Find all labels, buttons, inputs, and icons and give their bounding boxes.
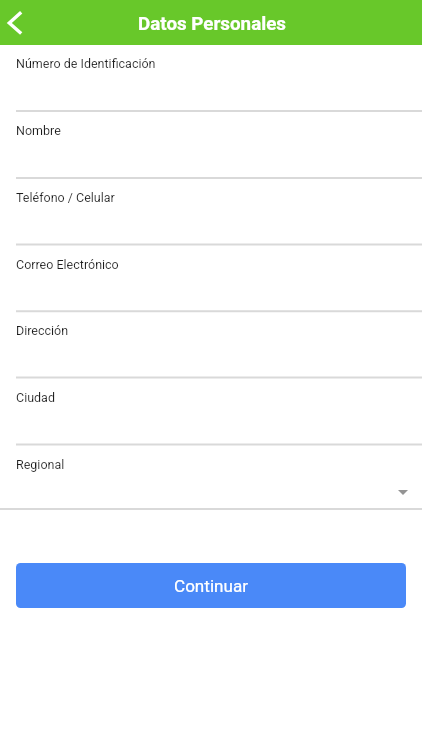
staticText: Número de Identificación (16, 56, 156, 71)
staticText: Dirección (16, 323, 69, 338)
staticText: Nombre (16, 123, 61, 138)
button[interactable]: Número de Identificación (0, 44, 422, 111)
staticText: Correo Electrónico (16, 257, 119, 272)
staticText: Regional (16, 457, 65, 472)
button[interactable]: Regional (0, 445, 422, 510)
button[interactable]: Nombre (0, 111, 422, 178)
button[interactable]: Continuar (16, 563, 406, 608)
staticText: Continuar (174, 576, 249, 596)
button[interactable]: Correo Electrónico (0, 245, 422, 312)
staticText: Datos Personales (138, 13, 286, 35)
button[interactable]: Dirección (0, 311, 422, 377)
button[interactable]: Back (0, 0, 40, 44)
button[interactable]: Select regional (386, 477, 420, 507)
button[interactable]: Ciudad (0, 378, 422, 445)
staticText: Ciudad (16, 390, 55, 405)
staticText: Teléfono / Celular (16, 190, 115, 205)
button[interactable]: Teléfono / Celular (0, 178, 422, 245)
